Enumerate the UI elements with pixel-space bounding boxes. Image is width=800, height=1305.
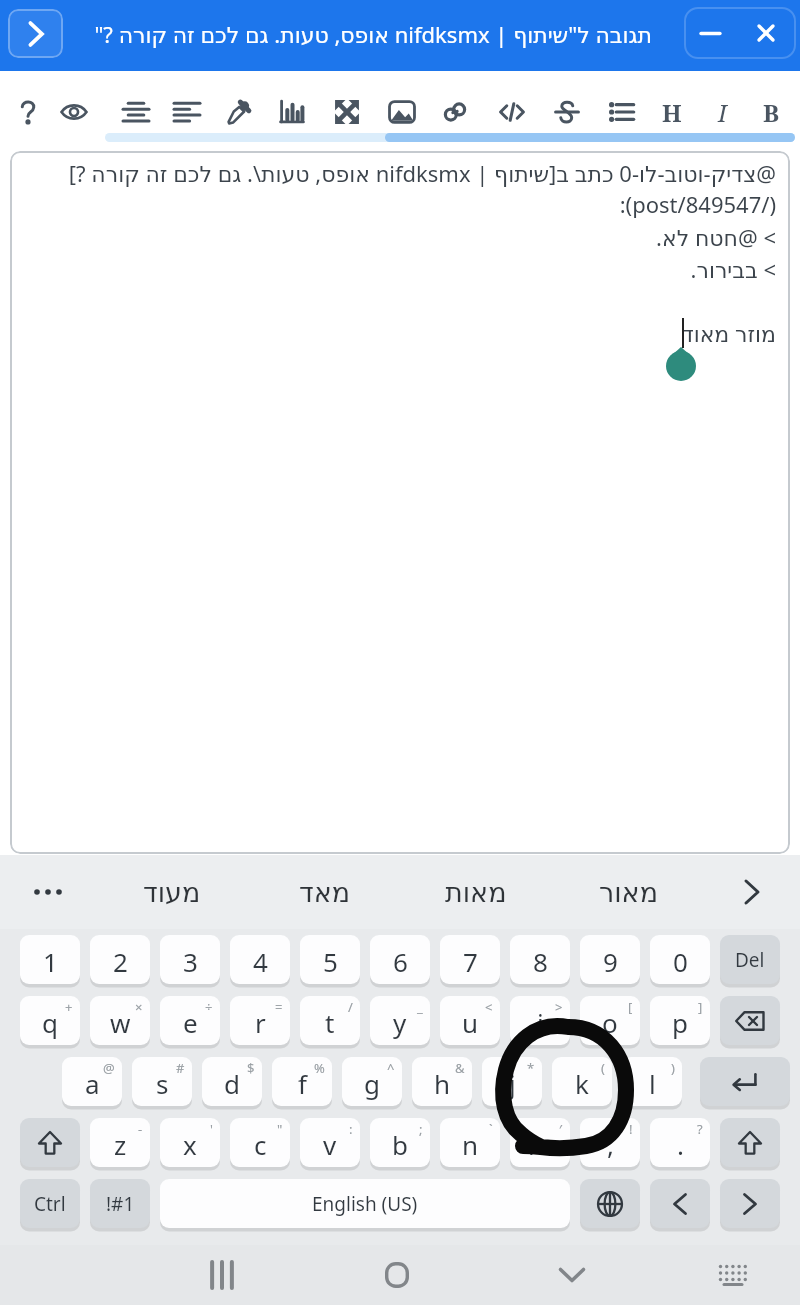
staticText: מאות	[445, 877, 507, 908]
button[interactable]: 8	[510, 935, 570, 985]
staticText: .	[677, 1127, 684, 1162]
button[interactable]: 5	[300, 935, 360, 985]
staticText: 6	[393, 944, 408, 979]
button[interactable]: g	[342, 1057, 402, 1107]
button[interactable]: e	[160, 996, 220, 1046]
button[interactable]	[720, 1118, 780, 1168]
button[interactable]: l	[622, 1057, 682, 1107]
button[interactable]: m	[510, 1118, 570, 1168]
staticText: =	[275, 998, 283, 1016]
button[interactable]	[217, 90, 261, 134]
button[interactable]	[720, 1179, 780, 1229]
button[interactable]	[650, 1179, 710, 1229]
button[interactable]	[722, 870, 782, 914]
staticText: m	[528, 1127, 553, 1162]
button[interactable]	[490, 90, 534, 134]
button[interactable]: 0	[650, 935, 710, 985]
button[interactable]: y	[370, 996, 430, 1046]
button[interactable]	[6, 90, 50, 134]
button[interactable]: !#1	[90, 1179, 150, 1229]
staticText: ;	[419, 1120, 423, 1138]
button[interactable]: 3	[160, 935, 220, 985]
button[interactable]: o	[580, 996, 640, 1046]
button[interactable]: מאות	[411, 870, 541, 914]
button[interactable]: j	[482, 1057, 542, 1107]
button[interactable]: k	[552, 1057, 612, 1107]
button[interactable]: 1	[20, 935, 80, 985]
button[interactable]: .	[650, 1118, 710, 1168]
button[interactable]: r	[230, 996, 290, 1046]
button[interactable]	[18, 870, 78, 914]
button[interactable]	[546, 1249, 598, 1301]
button[interactable]: 4	[230, 935, 290, 985]
button[interactable]: i	[510, 996, 570, 1046]
button[interactable]	[270, 90, 314, 134]
staticText: e	[183, 1005, 198, 1040]
button[interactable]	[165, 90, 209, 134]
button[interactable]	[20, 1118, 80, 1168]
staticText: 4	[253, 944, 268, 979]
button[interactable]	[325, 90, 369, 134]
button[interactable]: q	[20, 996, 80, 1046]
staticText: ?	[697, 1120, 703, 1138]
staticText: מאד	[299, 877, 351, 908]
button[interactable]: n	[440, 1118, 500, 1168]
button[interactable]: H	[650, 90, 694, 134]
button[interactable]: B	[749, 90, 793, 134]
button[interactable]: d	[202, 1057, 262, 1107]
button[interactable]	[707, 1249, 759, 1301]
staticText: Ctrl	[34, 1191, 66, 1217]
staticText: @	[103, 1059, 115, 1077]
button[interactable]: c	[230, 1118, 290, 1168]
button[interactable]	[114, 90, 158, 134]
button[interactable]	[600, 90, 644, 134]
button[interactable]: s	[132, 1057, 192, 1107]
button[interactable]: English (US)	[160, 1179, 570, 1229]
staticText: a	[85, 1066, 100, 1101]
button[interactable]: h	[412, 1057, 472, 1107]
button[interactable]: מאור	[563, 870, 693, 914]
button[interactable]: Del	[720, 935, 780, 985]
button[interactable]: @צדיק-וטוב-לו-0 כתב ב[שיתוף | nifdksmx א…	[10, 151, 790, 854]
button[interactable]: x	[160, 1118, 220, 1168]
button[interactable]: w	[90, 996, 150, 1046]
button[interactable]	[371, 1249, 423, 1301]
button[interactable]	[688, 11, 732, 55]
staticText: 7	[463, 944, 478, 979]
button[interactable]	[8, 9, 63, 58]
button[interactable]	[580, 1179, 640, 1229]
button[interactable]: p	[650, 996, 710, 1046]
button[interactable]: f	[272, 1057, 332, 1107]
button[interactable]	[744, 11, 788, 55]
button[interactable]: v	[300, 1118, 360, 1168]
button[interactable]	[545, 90, 589, 134]
button[interactable]: b	[370, 1118, 430, 1168]
staticText: b	[392, 1127, 408, 1162]
staticText: y	[393, 1005, 407, 1040]
button[interactable]: t	[300, 996, 360, 1046]
button[interactable]: a	[62, 1057, 122, 1107]
staticText: מעוד	[143, 877, 201, 908]
staticText: <	[485, 998, 493, 1016]
staticText: #	[176, 1059, 185, 1077]
button[interactable]	[433, 90, 477, 134]
button[interactable]	[52, 90, 96, 134]
button[interactable]: 6	[370, 935, 430, 985]
button[interactable]: מעוד	[107, 870, 237, 914]
staticText: `	[489, 1120, 493, 1138]
button[interactable]	[720, 996, 780, 1046]
button[interactable]	[196, 1249, 248, 1301]
button[interactable]: 2	[90, 935, 150, 985]
button[interactable]	[380, 90, 424, 134]
button[interactable]	[700, 1057, 790, 1107]
staticText: !#1	[106, 1191, 135, 1217]
staticText: u	[462, 1005, 479, 1040]
button[interactable]: u	[440, 996, 500, 1046]
button[interactable]: מאד	[260, 870, 390, 914]
button[interactable]: Ctrl	[20, 1179, 80, 1229]
button[interactable]: 9	[580, 935, 640, 985]
button[interactable]: I	[700, 90, 744, 134]
button[interactable]: ,	[580, 1118, 640, 1168]
button[interactable]: 7	[440, 935, 500, 985]
button[interactable]: z	[90, 1118, 150, 1168]
